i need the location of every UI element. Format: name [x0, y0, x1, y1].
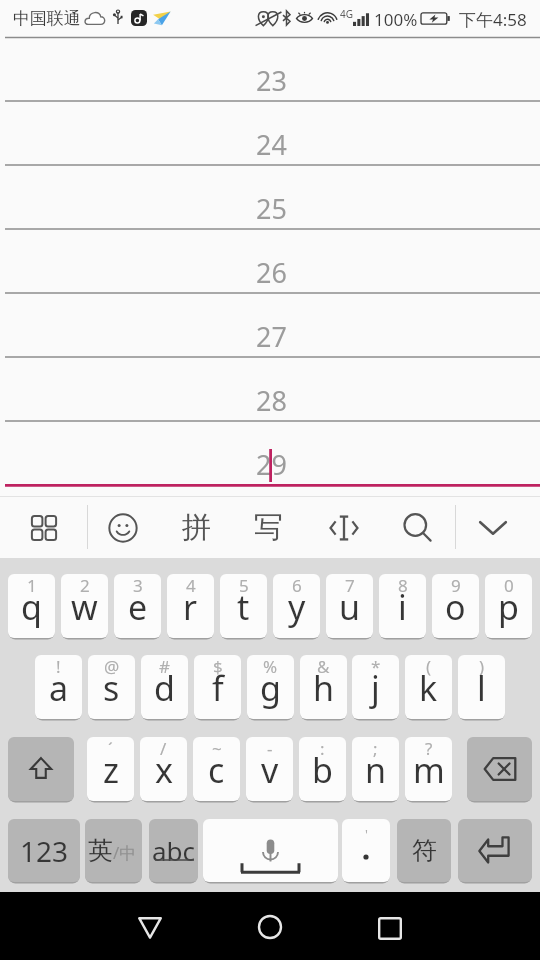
button[interactable]: 25	[0, 166, 540, 230]
staticText: 28	[256, 382, 287, 419]
button[interactable]: 5	[220, 574, 267, 638]
button[interactable]: Shift	[8, 737, 74, 801]
button[interactable]: Keyboard layouts	[20, 503, 68, 551]
staticText: 下午4:58	[459, 8, 527, 31]
button[interactable]: 6	[273, 574, 320, 638]
staticText: g	[260, 665, 281, 711]
button[interactable]: Search	[394, 503, 442, 551]
button[interactable]: Period	[342, 819, 390, 882]
button[interactable]: )	[458, 655, 505, 719]
button[interactable]: 符	[397, 819, 451, 882]
staticText: 27	[256, 318, 287, 355]
staticText: 符	[412, 835, 437, 866]
button[interactable]: -	[246, 737, 293, 801]
staticText: 写	[254, 509, 283, 546]
button[interactable]: 1	[8, 574, 55, 638]
button[interactable]: ´	[87, 737, 134, 801]
button[interactable]: 英	[85, 819, 142, 882]
staticText: 拼	[182, 509, 211, 546]
staticText: (	[426, 655, 432, 678]
staticText: n	[365, 747, 387, 793]
staticText: z	[103, 747, 119, 793]
button[interactable]: Backspace	[467, 737, 532, 801]
staticText: 6	[292, 574, 302, 597]
staticText: 25	[256, 190, 287, 227]
staticText: 3	[133, 574, 143, 597]
staticText: %	[263, 655, 278, 678]
button[interactable]: 28	[0, 358, 540, 422]
button[interactable]: Space	[203, 819, 338, 882]
button[interactable]: Hide keyboard	[469, 503, 517, 551]
button[interactable]: !	[35, 655, 82, 719]
button[interactable]: 123	[8, 819, 80, 882]
staticText: 4G	[340, 7, 353, 21]
staticText: #	[159, 655, 170, 678]
staticText: ?	[425, 737, 433, 760]
button[interactable]: abc	[149, 819, 198, 882]
staticText: &	[317, 655, 330, 678]
button[interactable]: /	[140, 737, 187, 801]
staticText: 2	[80, 574, 90, 597]
button[interactable]: 29	[0, 422, 540, 488]
staticText: !	[56, 655, 61, 678]
staticText: j	[371, 665, 380, 711]
button[interactable]: ;	[352, 737, 399, 801]
staticText: 26	[256, 254, 287, 291]
button[interactable]: ?	[405, 737, 452, 801]
staticText: 23	[256, 62, 287, 99]
button[interactable]: 写	[244, 502, 292, 552]
staticText: i	[398, 584, 407, 630]
staticText: 5	[239, 574, 249, 597]
staticText: 英	[88, 835, 113, 866]
staticText: s	[103, 665, 120, 711]
button[interactable]: %	[247, 655, 294, 719]
button[interactable]: 0	[485, 574, 532, 638]
button[interactable]: &	[300, 655, 347, 719]
button[interactable]: ~	[193, 737, 240, 801]
staticText: 1	[27, 574, 37, 597]
button[interactable]: Emoji	[99, 503, 147, 551]
button[interactable]: #	[141, 655, 188, 719]
staticText: 9	[451, 574, 461, 597]
staticText: 123	[20, 832, 69, 870]
staticText: 中国联通	[13, 8, 81, 29]
button[interactable]: 2	[61, 574, 108, 638]
staticText: 7	[345, 574, 355, 597]
button[interactable]: Recents	[360, 897, 420, 957]
button[interactable]: *	[352, 655, 399, 719]
button[interactable]: Move cursor	[320, 503, 368, 551]
button[interactable]: 9	[432, 574, 479, 638]
staticText: a	[49, 665, 69, 711]
button[interactable]: 23	[0, 38, 540, 102]
button[interactable]: 拼	[172, 502, 220, 552]
button[interactable]: 4	[167, 574, 214, 638]
button[interactable]: :	[299, 737, 346, 801]
button[interactable]: 27	[0, 294, 540, 358]
button[interactable]: Home	[240, 897, 300, 957]
staticText: '	[365, 825, 368, 843]
staticText: 29	[256, 446, 287, 483]
staticText: abc	[152, 833, 196, 868]
staticText: 100%	[374, 8, 418, 31]
button[interactable]: (	[405, 655, 452, 719]
staticText: 4	[186, 574, 196, 597]
staticText: 24	[256, 126, 287, 163]
staticText: ´	[108, 737, 113, 760]
staticText: l	[477, 665, 486, 711]
button[interactable]: Back	[120, 897, 180, 957]
staticText: e	[128, 584, 148, 630]
button[interactable]: 7	[326, 574, 373, 638]
button[interactable]: 26	[0, 230, 540, 294]
staticText: $	[213, 655, 223, 678]
button[interactable]: Enter	[458, 819, 532, 882]
button[interactable]: 24	[0, 102, 540, 166]
staticText: r	[183, 584, 198, 630]
staticText: x	[155, 747, 173, 793]
staticText: k	[419, 665, 438, 711]
button[interactable]: 8	[379, 574, 426, 638]
button[interactable]: @	[88, 655, 135, 719]
staticText: o	[445, 584, 466, 630]
staticText: u	[339, 584, 361, 630]
button[interactable]: $	[194, 655, 241, 719]
button[interactable]: 3	[114, 574, 161, 638]
